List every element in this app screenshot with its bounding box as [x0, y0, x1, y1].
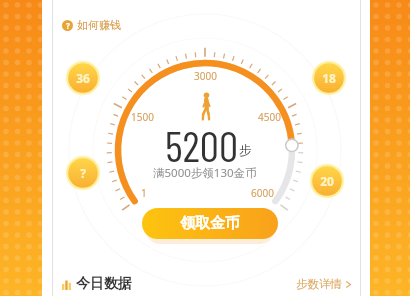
staticText: 6000: [251, 186, 274, 200]
staticText: 1500: [131, 110, 154, 124]
staticText: 18: [322, 70, 336, 86]
button[interactable]: Reward coin 18: [310, 59, 348, 97]
button[interactable]: Reward coin 20: [308, 162, 346, 200]
button[interactable]: Reward coin ?: [64, 154, 102, 192]
staticText: 满5000步领130金币: [153, 165, 257, 181]
staticText: ?: [66, 20, 70, 31]
staticText: 如何赚钱: [77, 18, 121, 32]
staticText: 1: [141, 186, 147, 200]
button[interactable]: ?: [62, 18, 121, 32]
staticText: 20: [320, 173, 334, 189]
staticText: 4500: [258, 110, 281, 124]
staticText: 步数详情: [296, 277, 342, 291]
staticText: 3000: [194, 69, 217, 83]
button[interactable]: Reward coin 36: [64, 59, 102, 97]
staticText: 36: [76, 70, 90, 86]
staticText: 领取金币: [180, 214, 240, 233]
staticText: 今日数据: [76, 275, 132, 293]
staticText: 5200: [165, 119, 239, 163]
button[interactable]: 步数详情: [296, 277, 352, 291]
button[interactable]: 领取金币: [142, 208, 278, 239]
staticText: 步: [239, 142, 252, 158]
staticText: ?: [80, 165, 86, 181]
